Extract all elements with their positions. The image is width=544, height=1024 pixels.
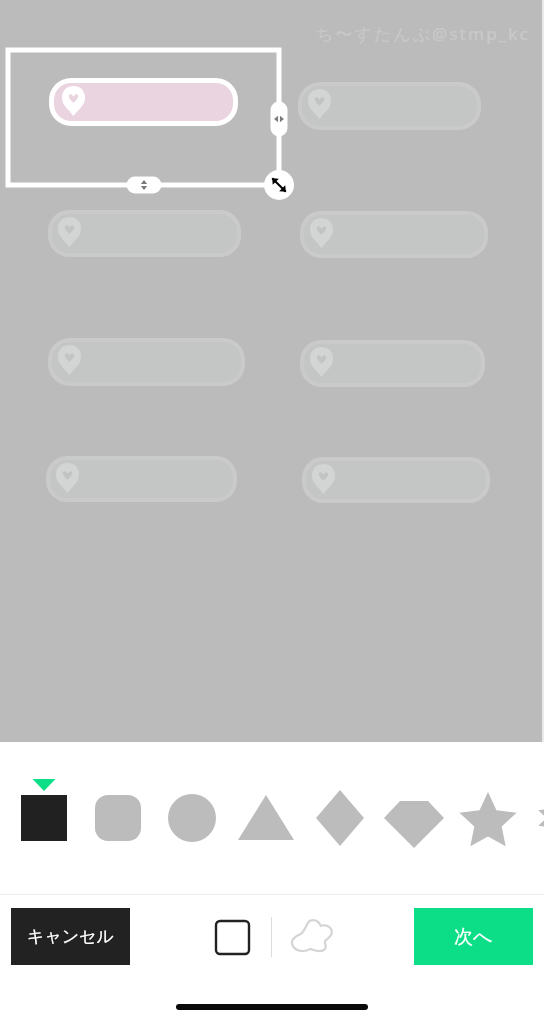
button[interactable]: Stamp [306,461,486,499]
button[interactable]: 次へ [414,908,533,965]
button[interactable]: Stamp [50,460,233,498]
staticText: 次へ [454,925,493,949]
button[interactable]: Square [11,784,77,850]
staticText: ち〜すたんぷ@stmp_kc [316,22,530,45]
button[interactable]: Selected stamp [54,83,233,121]
button[interactable]: Star [455,784,521,850]
button[interactable]: Burst [529,784,544,850]
button[interactable]: Free shape frame [287,911,337,961]
staticText: キャンセル [27,926,114,947]
button[interactable]: Stamp [52,214,237,253]
button[interactable]: Rounded square [85,784,151,850]
button[interactable]: Square frame [208,913,256,961]
button[interactable]: Circle [159,784,225,850]
button[interactable]: Triangle [233,784,299,850]
button[interactable]: Stamp [304,215,484,254]
button[interactable]: Diamond [307,784,373,850]
button[interactable]: Stamp [52,342,241,382]
button[interactable]: Stamp [302,86,477,126]
button[interactable]: キャンセル [11,908,130,965]
button[interactable]: Stamp [304,344,481,383]
button[interactable]: Gem [381,784,447,850]
